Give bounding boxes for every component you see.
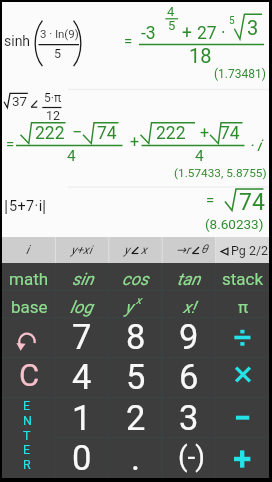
button[interactable]: [216, 263, 269, 291]
staticText: =: [6, 135, 15, 153]
staticText: N: [23, 413, 32, 428]
staticText: 6: [179, 357, 199, 397]
button[interactable]: [162, 237, 215, 263]
staticText: 222: [35, 123, 65, 144]
staticText: 7: [72, 317, 92, 357]
button[interactable]: [2, 263, 55, 291]
button[interactable]: [55, 291, 108, 319]
staticText: base: [11, 297, 48, 317]
button[interactable]: [2, 398, 55, 478]
staticText: (1.57433, 5.8755): [174, 166, 267, 180]
staticText: y: [125, 297, 133, 317]
staticText: 4: [72, 357, 92, 397]
staticText: (1.73481): [214, 67, 266, 81]
staticText: (-): [178, 440, 206, 473]
button[interactable]: [216, 291, 269, 319]
button[interactable]: [55, 438, 108, 478]
staticText: 9: [179, 317, 199, 357]
button[interactable]: [162, 263, 215, 291]
button[interactable]: [55, 318, 108, 358]
staticText: 3: [247, 16, 259, 39]
staticText: R: [23, 457, 31, 472]
staticText: +: [200, 123, 210, 142]
staticText: · i: [249, 136, 261, 155]
staticText: 74: [220, 123, 240, 144]
staticText: 27 ·: [197, 23, 226, 44]
staticText: cos: [122, 269, 149, 289]
staticText: i: [26, 242, 29, 257]
button[interactable]: [162, 318, 215, 358]
button[interactable]: [162, 358, 215, 398]
staticText: 1: [72, 398, 92, 438]
staticText: π: [238, 297, 249, 317]
staticText: 8: [126, 317, 146, 357]
staticText: math: [9, 269, 49, 289]
button[interactable]: [109, 237, 162, 263]
button[interactable]: [109, 438, 162, 478]
staticText: |: [42, 196, 47, 216]
staticText: x: [136, 294, 142, 307]
staticText: 18: [189, 44, 212, 67]
staticText: tan: [177, 269, 201, 289]
staticText: 74: [97, 123, 117, 144]
button[interactable]: [216, 358, 269, 398]
staticText: +: [182, 22, 192, 43]
button[interactable]: [2, 237, 55, 263]
staticText: 37: [12, 93, 28, 109]
staticText: −: [72, 122, 83, 143]
staticText: E: [23, 398, 31, 413]
staticText: y: [124, 243, 130, 257]
staticText: =: [124, 32, 133, 50]
staticText: +: [130, 132, 140, 151]
staticText: log: [70, 297, 93, 317]
staticText: -3: [141, 23, 156, 44]
button[interactable]: [2, 318, 55, 358]
staticText: 5: [168, 18, 176, 33]
button[interactable]: [55, 237, 108, 263]
staticText: 222: [156, 123, 186, 144]
staticText: sin: [72, 269, 94, 289]
button[interactable]: [216, 398, 269, 438]
staticText: 2: [126, 398, 146, 438]
staticText: x!: [183, 297, 196, 317]
staticText: 12: [46, 108, 61, 123]
staticText: |: [4, 196, 9, 216]
button[interactable]: [109, 263, 162, 291]
staticText: 4: [167, 4, 175, 19]
button[interactable]: [109, 291, 162, 319]
staticText: y+xi: [71, 243, 92, 257]
staticText: sinh: [4, 33, 31, 49]
button[interactable]: [109, 318, 162, 358]
staticText: 74: [239, 189, 265, 216]
button[interactable]: [216, 438, 269, 478]
button[interactable]: [55, 358, 108, 398]
staticText: stack: [222, 269, 264, 289]
button[interactable]: [162, 398, 215, 438]
button[interactable]: [55, 398, 108, 438]
staticText: 4: [67, 147, 76, 165]
button[interactable]: [162, 291, 215, 319]
button[interactable]: [2, 358, 55, 398]
staticText: θ: [201, 242, 208, 256]
staticText: 5: [126, 357, 146, 397]
staticText: 5 + 7 · i: [9, 198, 41, 215]
button[interactable]: [109, 358, 162, 398]
button[interactable]: [216, 237, 269, 263]
button[interactable]: [55, 263, 108, 291]
staticText: .: [131, 438, 141, 478]
button[interactable]: [109, 398, 162, 438]
staticText: →r: [176, 243, 190, 257]
staticText: 5: [229, 15, 235, 27]
staticText: Pg 2/2: [231, 243, 269, 258]
staticText: C: [19, 357, 40, 393]
staticText: (8.60233): [205, 216, 264, 232]
button[interactable]: [216, 318, 269, 358]
button[interactable]: [162, 438, 215, 478]
staticText: x: [141, 243, 147, 257]
staticText: E: [23, 442, 31, 457]
staticText: 5·π: [44, 91, 62, 105]
staticText: =: [206, 191, 215, 209]
staticText: T: [23, 428, 31, 443]
staticText: 5: [54, 46, 62, 61]
button[interactable]: [2, 291, 55, 319]
